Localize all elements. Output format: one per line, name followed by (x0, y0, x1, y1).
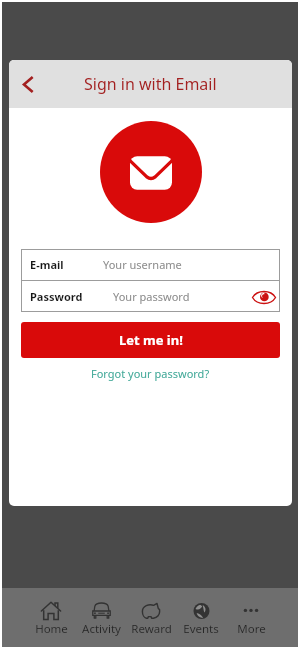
button[interactable]: Events (176, 588, 226, 647)
staticText: Your password (113, 289, 190, 304)
button[interactable]: Home (26, 588, 76, 647)
staticText: Events (183, 621, 219, 637)
button[interactable]: Back (9, 65, 47, 103)
staticText: Let me in! (119, 331, 183, 349)
staticText: Home (35, 621, 68, 637)
button[interactable]: More (226, 588, 276, 647)
staticText: Sign in with Email (84, 73, 217, 95)
staticText: More (237, 621, 266, 637)
staticText: Password (30, 289, 83, 304)
staticText: Reward (131, 621, 172, 637)
button[interactable]: E-mail (21, 249, 280, 280)
button[interactable]: Forgot your password? (85, 364, 216, 383)
button[interactable]: Let me in! (21, 322, 280, 358)
button[interactable]: Show password (250, 283, 278, 311)
staticText: E-mail (30, 257, 64, 272)
staticText: Your username (103, 257, 182, 272)
button[interactable]: Password (21, 281, 280, 312)
button[interactable]: Reward (126, 588, 176, 647)
button[interactable]: Activity (76, 588, 126, 647)
staticText: Activity (82, 621, 121, 637)
